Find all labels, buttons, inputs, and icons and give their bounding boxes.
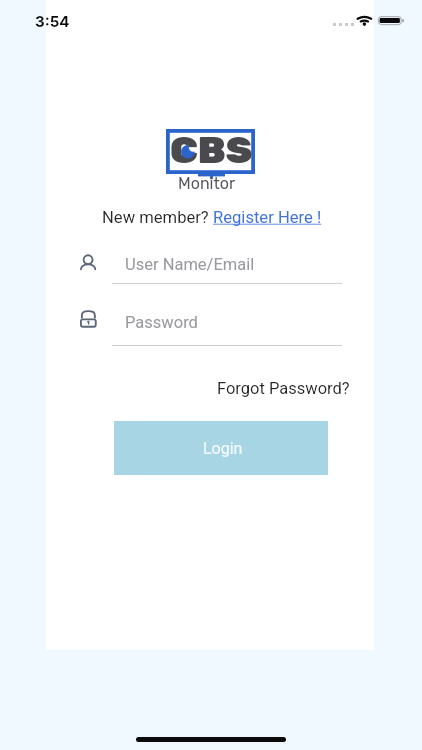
button[interactable]: Register Here ! <box>213 208 322 227</box>
staticText: Password <box>125 313 198 332</box>
staticText: CBS <box>170 127 253 172</box>
other: User name <box>79 255 99 277</box>
staticText: User Name/Email <box>125 255 255 274</box>
button[interactable]: User Name/Email <box>112 245 342 284</box>
staticText: Monitor <box>178 174 235 193</box>
staticText: Login <box>203 439 243 458</box>
other: Battery <box>377 15 406 27</box>
other: Wi-Fi <box>356 15 374 27</box>
staticText: Register Here ! <box>213 208 322 227</box>
staticText: Forgot Password? <box>217 379 350 398</box>
staticText: New member? <box>102 208 213 227</box>
button[interactable]: Forgot Password? <box>217 379 350 398</box>
other: Password <box>79 310 99 332</box>
button[interactable]: Login <box>114 421 328 475</box>
button[interactable]: Password <box>112 303 342 346</box>
staticText: 3:54 <box>35 12 70 30</box>
